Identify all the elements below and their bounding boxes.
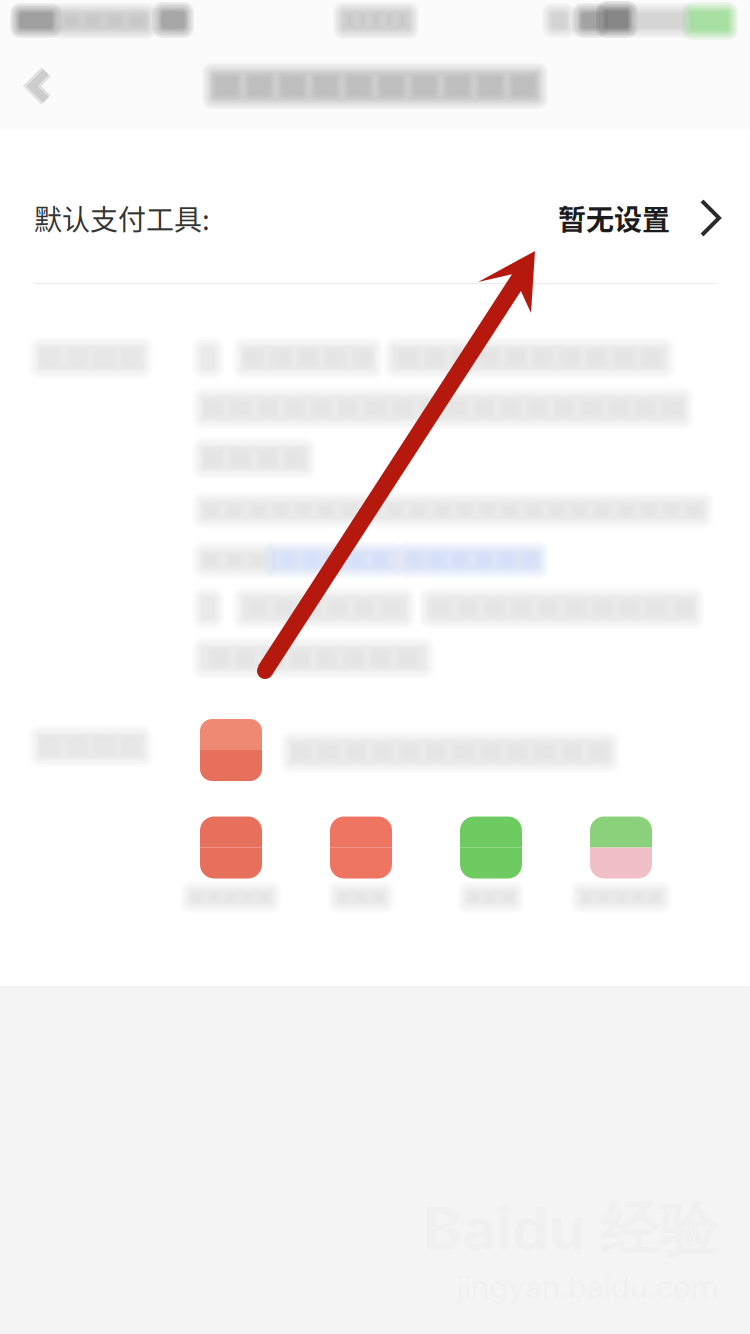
button[interactable]: Payment method — [556, 812, 686, 908]
button[interactable]: Payment method — [166, 812, 296, 908]
staticText: 暂无设置 — [558, 198, 670, 238]
button[interactable]: 默认支付工具: — [0, 174, 750, 262]
button[interactable]: Back — [0, 64, 84, 108]
button[interactable]: Payment method — [296, 812, 426, 908]
button[interactable]: Payment method — [426, 812, 556, 908]
staticText: 默认支付工具: — [34, 198, 210, 238]
